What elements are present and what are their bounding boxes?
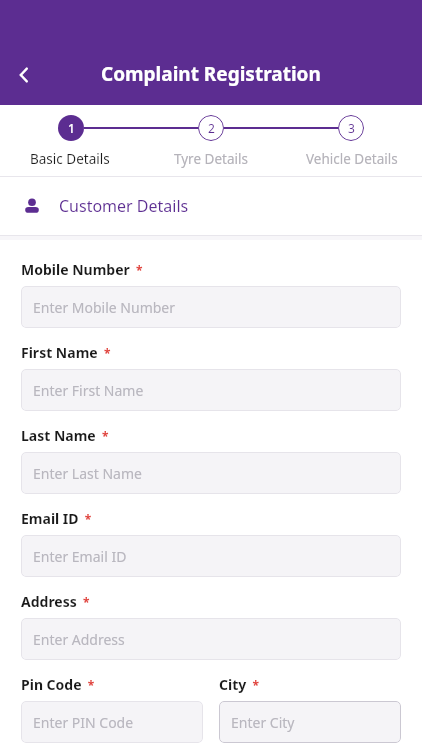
staticText: First Name * — [21, 343, 111, 362]
button[interactable]: Enter PIN Code — [21, 701, 203, 743]
button[interactable]: 2 — [198, 115, 224, 141]
button[interactable]: Enter Address — [21, 618, 401, 660]
staticText: 1 — [68, 120, 75, 136]
staticText: 3 — [348, 120, 355, 136]
button[interactable]: Enter Last Name — [21, 452, 401, 494]
staticText: Enter Last Name — [33, 464, 142, 483]
staticText: Address * — [21, 592, 90, 611]
staticText: Enter Mobile Number — [33, 298, 176, 317]
staticText: 2 — [208, 120, 215, 136]
button[interactable]: Enter City — [219, 701, 401, 743]
staticText: Enter City — [231, 713, 295, 732]
staticText: Enter Email ID — [33, 547, 127, 566]
button[interactable]: Basic Details — [0, 150, 140, 168]
staticText: City * — [219, 675, 259, 694]
staticText: Email ID * — [21, 509, 92, 528]
button[interactable]: 3 — [338, 115, 364, 141]
button[interactable]: Enter First Name — [21, 369, 401, 411]
staticText: Enter Address — [33, 630, 125, 649]
button[interactable]: 1 — [58, 115, 84, 141]
button[interactable]: Enter Email ID — [21, 535, 401, 577]
staticText: Basic Details — [30, 150, 110, 168]
button[interactable]: Vehicle Details — [281, 150, 422, 168]
button[interactable]: Customer Details — [0, 177, 422, 235]
staticText: Customer Details — [59, 195, 189, 217]
staticText: Last Name * — [21, 426, 109, 445]
button[interactable]: Enter Mobile Number — [21, 286, 401, 328]
staticText: Enter PIN Code — [33, 713, 134, 732]
button[interactable]: Back — [6, 57, 42, 93]
staticText: Vehicle Details — [306, 150, 398, 168]
staticText: Enter First Name — [33, 381, 144, 400]
staticText: Tyre Details — [174, 150, 248, 168]
staticText: Complaint Registration — [101, 61, 321, 87]
button[interactable]: Tyre Details — [140, 150, 281, 168]
staticText: Mobile Number * — [21, 260, 143, 279]
staticText: Pin Code * — [21, 675, 95, 694]
